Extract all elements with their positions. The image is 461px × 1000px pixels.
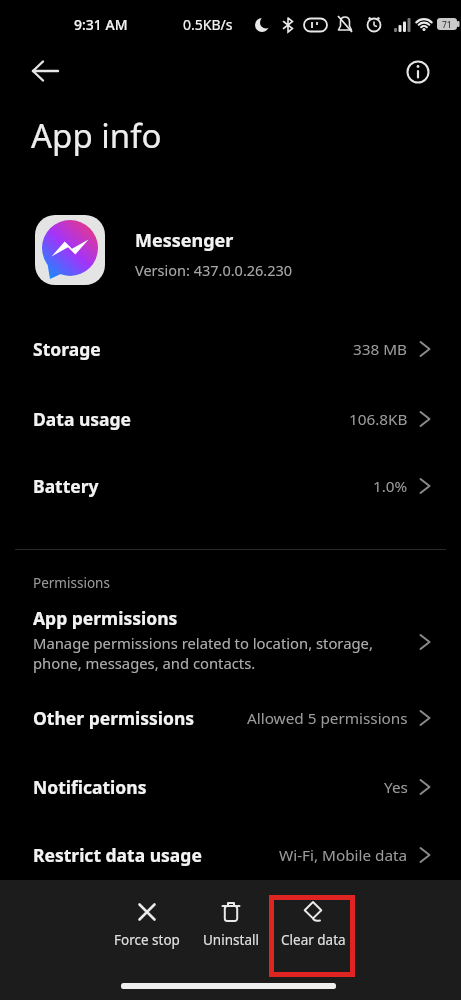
button[interactable]: Notifications [0,753,461,821]
staticText: 0.5KB/s [183,15,233,34]
staticText: Uninstall [203,931,259,949]
staticText: Yes [384,777,408,798]
button[interactable] [22,52,62,92]
staticText: Notifications [33,775,147,799]
staticText: 1.0% [373,476,408,497]
staticText: Version: 437.0.0.26.230 [135,260,293,280]
button[interactable]: Restrict data usage [0,821,461,889]
staticText: Battery [33,474,99,498]
staticText: 338 MB [353,339,408,360]
staticText: Manage permissions related to location, … [33,633,373,673]
staticText: Allowed 5 permissions [247,708,408,729]
staticText: Force stop [114,931,180,949]
staticText: App info [31,113,162,158]
staticText: App permissions [33,606,178,630]
staticText: 9:31 AM [74,15,128,34]
button[interactable]: Messenger [0,205,461,295]
staticText: Clear data [281,931,346,949]
staticText: Wi-Fi, Mobile data [279,845,408,866]
button[interactable]: Clear data [263,900,363,949]
staticText: Storage [33,337,101,361]
staticText: Messenger [135,228,234,253]
staticText: Other permissions [33,706,195,730]
staticText: 106.8KB [349,409,408,430]
staticText: Permissions [33,574,110,592]
button[interactable]: Uninstall [181,900,281,949]
button[interactable]: Data usage [0,385,461,453]
button[interactable]: Force stop [97,900,197,949]
button[interactable]: Battery [0,452,461,520]
staticText: Data usage [33,407,132,431]
staticText: 71 [442,19,452,31]
staticText: Restrict data usage [33,843,202,867]
button[interactable]: Storage [0,315,461,383]
button[interactable] [400,54,436,90]
button[interactable]: Other permissions [0,684,461,752]
button[interactable]: App permissions [0,598,461,686]
